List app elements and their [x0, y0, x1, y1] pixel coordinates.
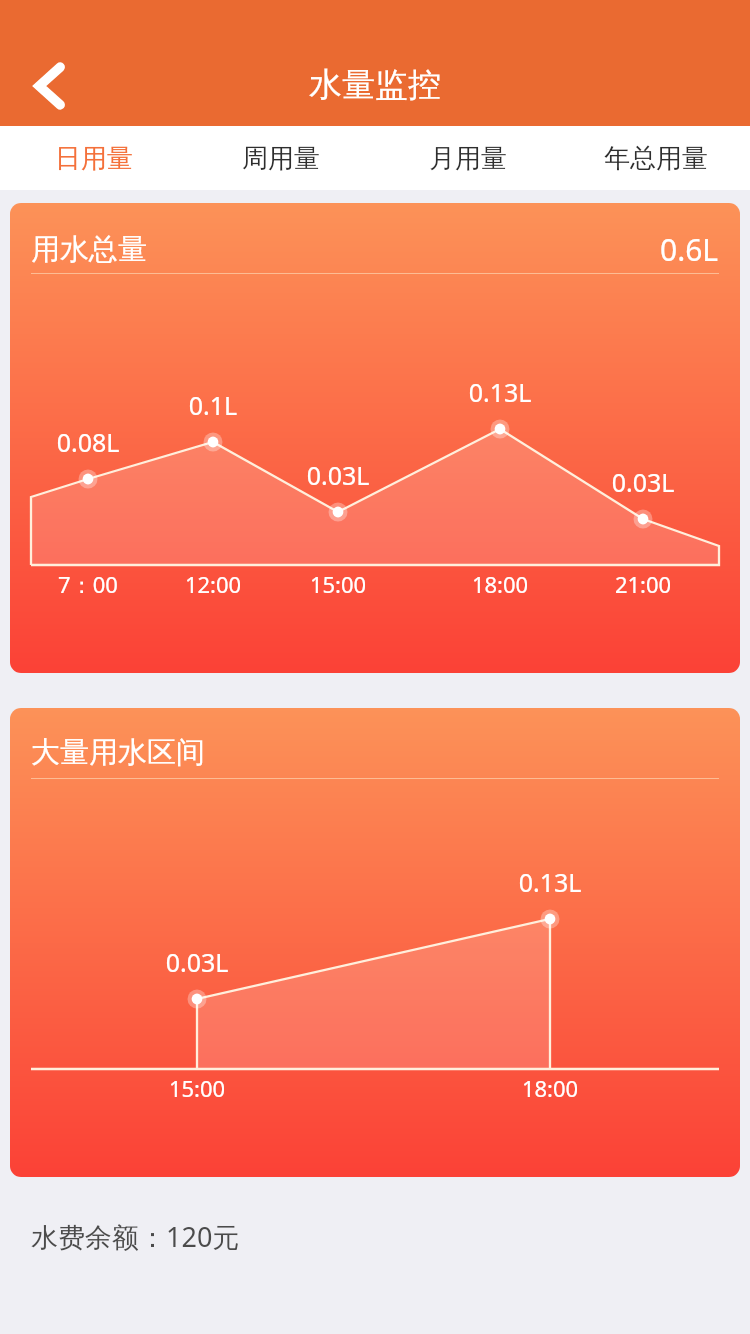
button[interactable]: 用水总量: [10, 203, 740, 673]
staticText: 0.6L: [660, 229, 719, 270]
staticText: 周用量: [242, 142, 320, 175]
staticText: 水量监控: [309, 64, 441, 106]
staticText: 12:00: [165, 569, 261, 599]
staticText: 0.13L: [455, 375, 545, 409]
staticText: 18:00: [452, 569, 548, 599]
staticText: 用水总量: [31, 231, 147, 268]
staticText: 7：00: [40, 569, 136, 599]
staticText: 15:00: [149, 1073, 245, 1103]
staticText: 0.03L: [293, 458, 383, 492]
staticText: 0.13L: [505, 865, 595, 899]
staticText: 水费余额：120元: [31, 1218, 240, 1255]
staticText: 21:00: [595, 569, 691, 599]
staticText: 月用量: [429, 142, 507, 175]
staticText: 15:00: [290, 569, 386, 599]
button[interactable]: 周用量: [187, 126, 374, 190]
button[interactable]: 大量用水区间: [10, 708, 740, 1177]
button[interactable]: 日用量: [0, 126, 187, 190]
staticText: 18:00: [502, 1073, 598, 1103]
button[interactable]: Back: [12, 48, 88, 124]
staticText: 0.1L: [168, 388, 258, 422]
button[interactable]: 年总用量: [562, 126, 750, 190]
staticText: 年总用量: [604, 142, 708, 175]
staticText: 日用量: [55, 142, 133, 175]
staticText: 0.03L: [598, 465, 688, 499]
staticText: 0.08L: [43, 425, 133, 459]
button[interactable]: 月用量: [374, 126, 562, 190]
staticText: 0.03L: [152, 945, 242, 979]
staticText: 大量用水区间: [31, 734, 205, 771]
